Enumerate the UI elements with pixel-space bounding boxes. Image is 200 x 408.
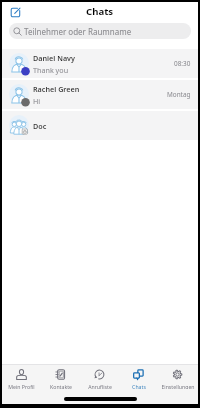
staticText: Chats	[132, 383, 146, 389]
staticText: Daniel Navy	[33, 53, 75, 63]
staticText: Hi	[33, 96, 41, 106]
staticText: Einstellungen	[161, 383, 195, 389]
button[interactable]: Rachel Green	[2, 80, 198, 109]
staticText: Rachel Green	[33, 84, 80, 94]
staticText: 08:30	[174, 59, 191, 68]
button[interactable]: Daniel Navy	[2, 49, 198, 78]
button[interactable]: Teilnehmer oder Raumname	[9, 23, 191, 39]
button[interactable]: Einstellungen	[158, 365, 197, 389]
staticText: Doc	[33, 121, 47, 131]
staticText: Teilnehmer oder Raumname	[24, 26, 132, 37]
button[interactable]: Neuer Chat	[8, 5, 22, 19]
staticText: Mein Profil	[8, 383, 35, 389]
button[interactable]: Doc	[2, 111, 198, 140]
staticText: Chats	[86, 5, 114, 18]
staticText: Thank you	[33, 65, 69, 75]
button[interactable]: Chats	[119, 365, 158, 389]
button[interactable]: Kontakte	[41, 365, 80, 389]
staticText: Anrufliste	[88, 383, 112, 389]
button[interactable]: Mein Profil	[1, 365, 41, 389]
staticText: Kontakte	[50, 383, 72, 389]
button[interactable]: Anrufliste	[80, 365, 119, 389]
staticText: Montag	[167, 90, 191, 99]
